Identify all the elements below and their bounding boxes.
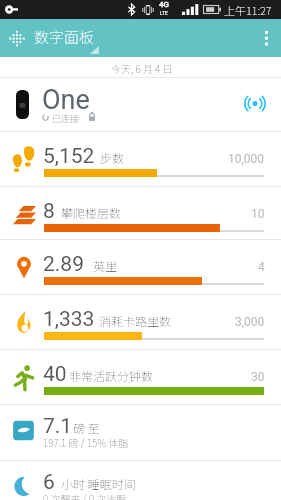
staticText: 小时 睡眠时间: [61, 475, 136, 492]
staticText: 2.89: [43, 252, 84, 277]
staticText: 7.1: [43, 414, 73, 439]
button[interactable]: 5,152: [0, 131, 281, 186]
staticText: 磅 至: [73, 419, 100, 436]
staticText: 攀爬楼层数: [61, 204, 122, 221]
staticText: 今天, 6 月 4 日: [111, 61, 173, 75]
staticText: 数字面板: [34, 26, 95, 48]
staticText: LTE: [160, 10, 168, 16]
staticText: 步数: [100, 149, 125, 166]
button[interactable]: 1,333: [0, 294, 281, 349]
staticText: 10: [251, 207, 265, 221]
staticText: 4: [258, 260, 265, 274]
button[interactable]: Sync: [239, 87, 271, 119]
button[interactable]: 40: [0, 349, 281, 404]
staticText: 30: [251, 370, 265, 384]
staticText: 上午11:27: [224, 2, 272, 18]
button[interactable]: 7.1: [0, 404, 281, 460]
staticText: 消耗卡路里数: [99, 312, 172, 329]
staticText: 197.1 磅 / 15% 体脂: [43, 435, 129, 449]
button[interactable]: 8: [0, 186, 281, 241]
staticText: 40: [43, 362, 67, 387]
staticText: 5,152: [43, 144, 95, 169]
staticText: 已连接: [52, 112, 80, 125]
staticText: 英里: [93, 257, 118, 274]
button[interactable]: 6: [0, 460, 281, 500]
staticText: 4G: [159, 0, 169, 9]
staticText: 6: [43, 470, 55, 495]
staticText: 非常活跃分钟数: [69, 367, 154, 384]
staticText: One: [42, 84, 90, 116]
staticText: 8: [43, 199, 55, 224]
button[interactable]: More options: [251, 19, 281, 57]
button[interactable]: 2.89: [0, 239, 281, 294]
staticText: 0 次醒来 / 0 次浅眠: [43, 491, 127, 500]
staticText: 1,333: [43, 307, 95, 332]
button[interactable]: One: [0, 78, 281, 131]
staticText: 10,000: [228, 152, 265, 166]
staticText: 3,000: [235, 315, 265, 329]
